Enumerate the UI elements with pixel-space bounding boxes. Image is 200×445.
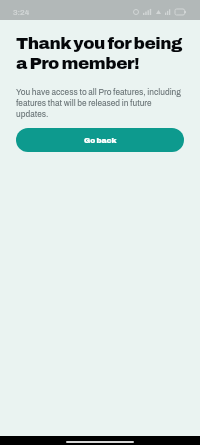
staticText: Thank you for being a Pro member! xyxy=(16,34,182,72)
staticText: Go back xyxy=(84,136,117,144)
button[interactable]: Go back xyxy=(16,128,184,152)
staticText: 3:24 xyxy=(13,8,30,17)
other: Home xyxy=(66,441,134,443)
staticText: You have access to all Pro features, inc… xyxy=(16,88,184,118)
